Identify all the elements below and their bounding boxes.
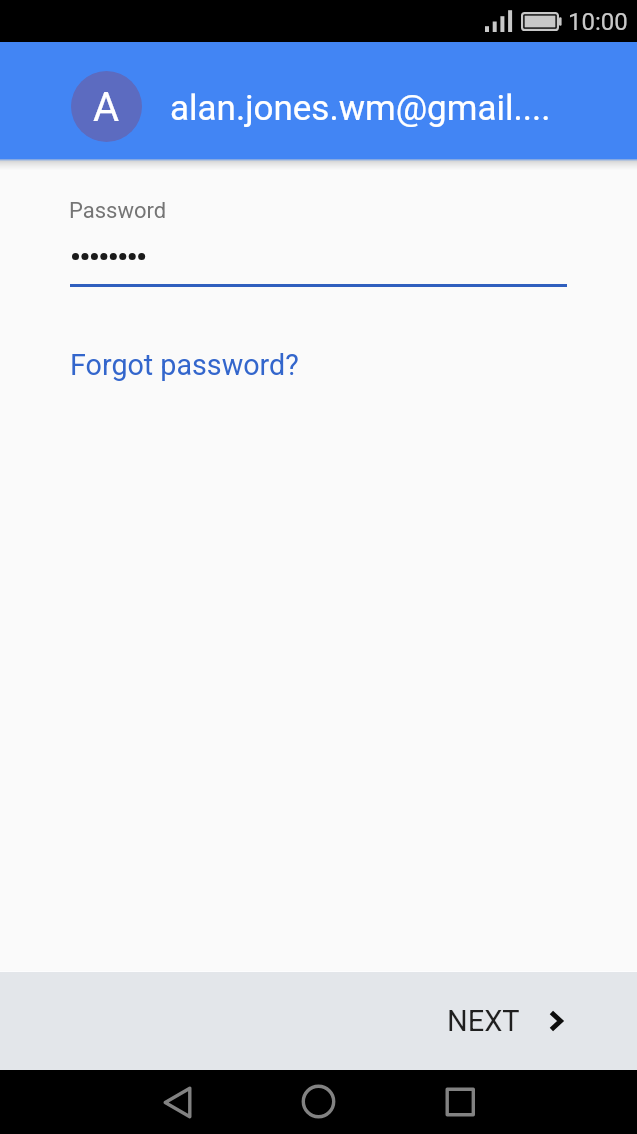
staticText: NEXT bbox=[447, 1004, 520, 1038]
button[interactable]: Forgot password? bbox=[70, 341, 307, 389]
staticText: alan.jones.wm@gmail.... bbox=[170, 88, 551, 129]
staticText: Forgot password? bbox=[70, 348, 299, 382]
button[interactable]: Home bbox=[288, 1070, 348, 1134]
button[interactable]: Password bbox=[70, 189, 567, 287]
button[interactable]: Back bbox=[147, 1070, 207, 1134]
staticText: Password bbox=[69, 198, 167, 224]
button[interactable]: Recent apps bbox=[430, 1070, 490, 1134]
button[interactable]: Account bbox=[71, 71, 142, 142]
button[interactable]: NEXT bbox=[423, 990, 637, 1052]
staticText: A bbox=[93, 84, 120, 131]
staticText: 10:00 bbox=[568, 8, 628, 36]
